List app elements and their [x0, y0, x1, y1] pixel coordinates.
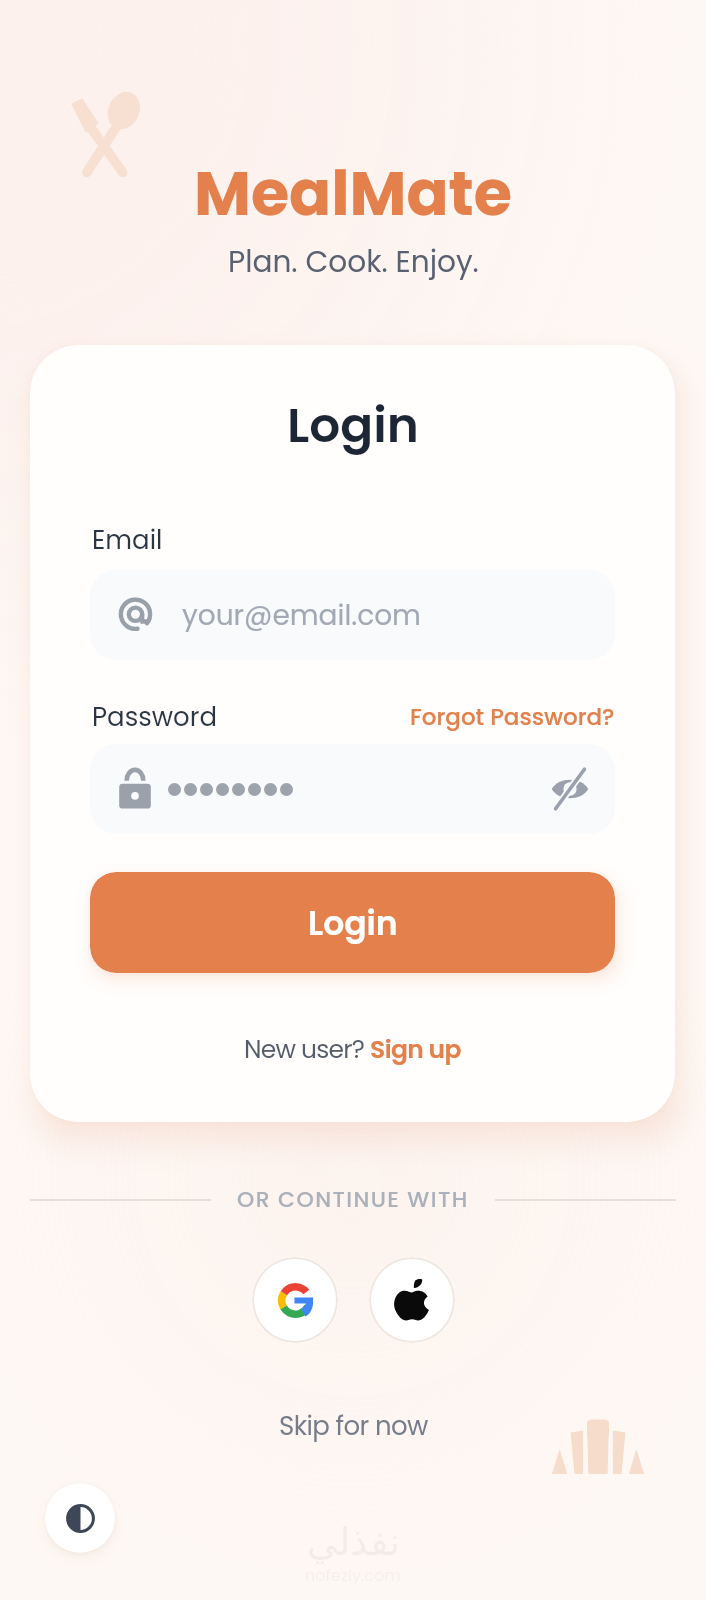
staticText: Plan. Cook. Enjoy.: [228, 241, 479, 282]
button[interactable]: Forgot Password?: [410, 701, 615, 733]
staticText: Sign up: [370, 1032, 461, 1067]
button[interactable]: Show password: [551, 770, 589, 808]
button[interactable]: your@email.com: [90, 570, 615, 660]
button[interactable]: Skip for now: [279, 1408, 428, 1444]
staticText: Skip for now: [279, 1408, 428, 1444]
staticText: Login: [287, 391, 419, 459]
staticText: OR CONTINUE WITH: [237, 1184, 469, 1215]
staticText: your@email.com: [182, 596, 421, 635]
button[interactable]: Toggle theme: [45, 1483, 115, 1553]
staticText: Password: [92, 699, 218, 735]
button[interactable]: Show password: [90, 744, 615, 834]
staticText: نفذلي: [307, 1520, 400, 1564]
staticText: Email: [92, 522, 163, 558]
button[interactable]: Continue with Apple: [369, 1257, 455, 1343]
button[interactable]: Login: [90, 872, 615, 973]
staticText: New user?: [244, 1032, 370, 1067]
staticText: Login: [308, 900, 398, 946]
button[interactable]: Sign up: [370, 1032, 461, 1067]
staticText: Forgot Password?: [410, 701, 615, 733]
staticText: MealMate: [194, 150, 512, 237]
button[interactable]: Continue with Google: [252, 1257, 338, 1343]
